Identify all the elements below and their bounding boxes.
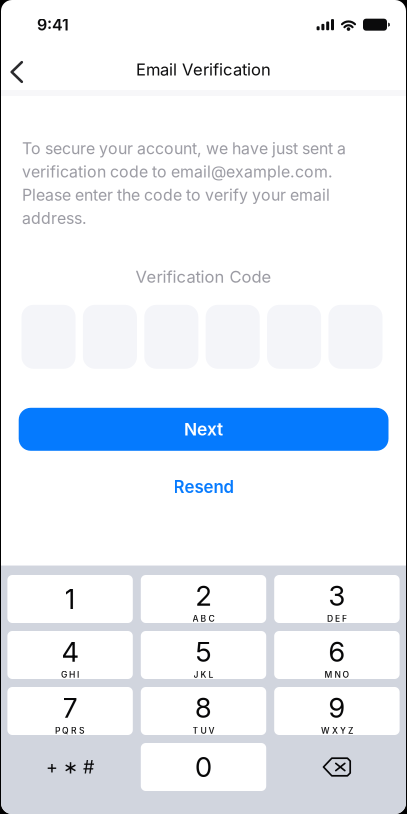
staticText: 8 <box>195 691 212 724</box>
staticText: 2 <box>195 579 211 612</box>
staticText: Verification Code <box>135 267 271 287</box>
staticText: G H I <box>61 669 79 680</box>
button[interactable]: 3 <box>274 575 400 623</box>
staticText: 4 <box>62 635 79 668</box>
staticText: 3 <box>328 579 345 612</box>
button[interactable]: Resend <box>1 470 406 504</box>
button[interactable]: 5 <box>141 631 266 679</box>
staticText: 5 <box>195 635 211 668</box>
staticText: M N O <box>324 669 349 680</box>
staticText: Next <box>184 419 223 440</box>
staticText: 9 <box>328 691 345 724</box>
staticText: J K L <box>193 669 213 680</box>
staticText: W X Y Z <box>321 725 353 736</box>
staticText: Resend <box>173 477 233 497</box>
button[interactable]: 2 <box>141 575 266 623</box>
button[interactable]: 7 <box>7 687 133 735</box>
staticText: + ∗ # <box>46 756 94 778</box>
staticText: 7 <box>63 691 78 724</box>
button[interactable]: Next <box>19 408 388 451</box>
staticText: 6 <box>328 635 345 668</box>
staticText: 0 <box>195 750 212 784</box>
button[interactable]: 8 <box>141 687 266 735</box>
button[interactable]: Back <box>1 44 37 90</box>
button[interactable]: 1 <box>7 575 133 623</box>
staticText: Email Verification <box>136 59 271 79</box>
staticText: To secure your account, we have just sen… <box>22 139 346 228</box>
button[interactable]: 4 <box>7 631 133 679</box>
button[interactable]: Symbols <box>7 743 133 791</box>
staticText: 1 <box>65 582 76 616</box>
button[interactable]: 9 <box>274 687 400 735</box>
button[interactable]: 0 <box>141 743 266 791</box>
button[interactable]: Delete <box>274 743 400 791</box>
staticText: T U V <box>192 725 214 736</box>
staticText: P Q R S <box>55 725 85 736</box>
button[interactable]: 6 <box>274 631 400 679</box>
staticText: D E F <box>327 613 347 624</box>
staticText: 9:41 <box>37 15 69 34</box>
staticText: A B C <box>192 613 214 624</box>
